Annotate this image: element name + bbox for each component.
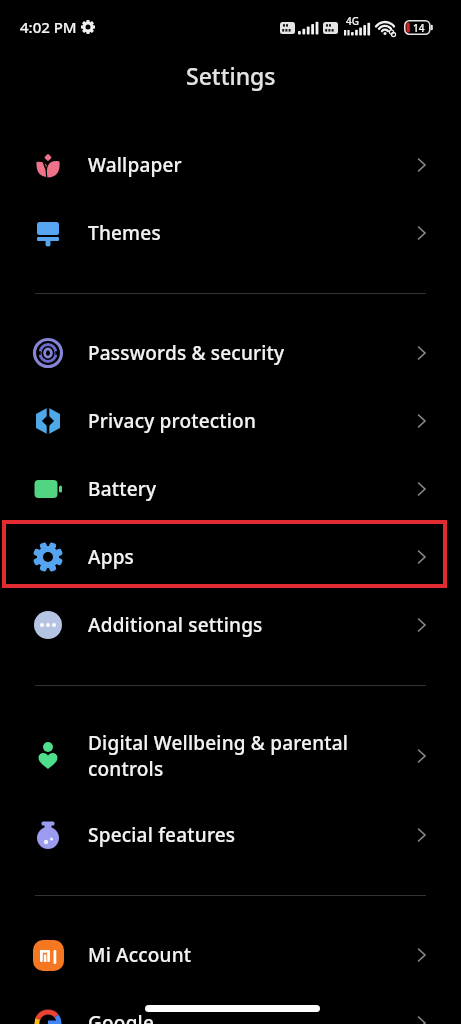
button[interactable]: Privacy protection <box>0 387 461 455</box>
staticText: Battery <box>88 476 157 502</box>
staticText: Themes <box>88 220 161 246</box>
staticText: Google <box>88 1010 155 1024</box>
button[interactable]: Mi Account <box>0 921 461 989</box>
staticText: 14 <box>413 21 425 35</box>
staticText: 4:02 PM <box>20 17 77 37</box>
button[interactable]: Google <box>0 989 461 1024</box>
staticText: Apps <box>88 544 135 570</box>
staticText: Passwords & security <box>88 340 285 366</box>
button[interactable]: Passwords & security <box>0 319 461 387</box>
staticText: Settings <box>186 60 276 91</box>
button[interactable]: Special features <box>0 801 461 869</box>
button[interactable]: Wallpaper <box>0 131 461 199</box>
button[interactable]: Digital Wellbeing & parental <box>0 711 461 801</box>
button[interactable]: Battery <box>0 455 461 523</box>
staticText: Special features <box>88 822 236 848</box>
staticText: Mi Account <box>88 942 192 968</box>
staticText: 4G <box>346 14 359 28</box>
button[interactable]: Additional settings <box>0 591 461 659</box>
staticText: Digital Wellbeing & parental <box>88 730 349 756</box>
staticText: Additional settings <box>88 612 263 638</box>
button[interactable]: Apps <box>0 523 461 591</box>
staticText: Privacy protection <box>88 408 257 434</box>
staticText: Wallpaper <box>88 152 182 178</box>
staticText: controls <box>88 756 164 782</box>
button[interactable]: Themes <box>0 199 461 267</box>
